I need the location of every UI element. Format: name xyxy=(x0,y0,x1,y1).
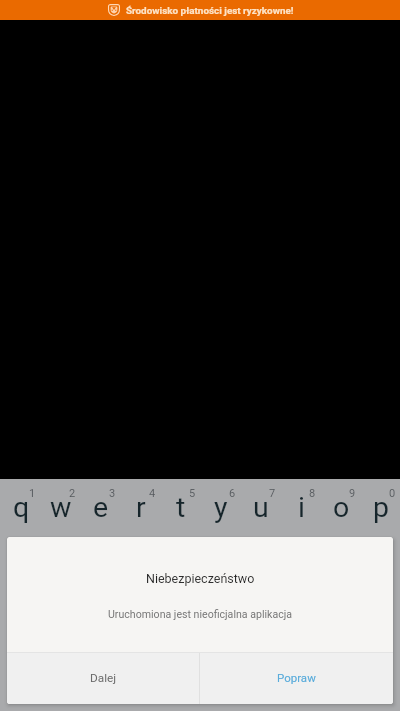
staticText: 5 xyxy=(189,487,196,500)
staticText: 2 xyxy=(69,487,76,500)
staticText: Uruchomiona jest nieoficjalna aplikacja xyxy=(108,608,293,620)
button[interactable]: Popraw xyxy=(200,653,393,704)
staticText: 6 xyxy=(229,487,236,500)
button[interactable]: 5 xyxy=(160,479,200,533)
button[interactable]: 8 xyxy=(280,479,320,533)
button[interactable]: 1 xyxy=(0,479,40,533)
button[interactable]: 4 xyxy=(120,479,160,533)
button[interactable]: 6 xyxy=(200,479,240,533)
button[interactable]: 2 xyxy=(40,479,80,533)
button[interactable]: 3 xyxy=(80,479,120,533)
staticText: q xyxy=(13,491,30,524)
staticText: r xyxy=(136,491,146,524)
staticText: Dalej xyxy=(90,671,117,685)
staticText: i xyxy=(298,491,305,524)
staticText: Niebezpieczeństwo xyxy=(146,571,255,586)
staticText: o xyxy=(333,491,350,524)
button[interactable]: Dalej xyxy=(7,653,199,704)
button[interactable]: Ostrzeżenie o ryzykownym środowisku xyxy=(0,0,400,20)
button[interactable]: 9 xyxy=(320,479,360,533)
button[interactable]: 0 xyxy=(360,479,400,533)
staticText: t xyxy=(176,491,186,524)
staticText: e xyxy=(93,491,109,524)
staticText: w xyxy=(50,491,72,524)
staticText: Popraw xyxy=(277,671,316,684)
staticText: 9 xyxy=(349,487,356,500)
button[interactable]: 7 xyxy=(240,479,280,533)
staticText: 8 xyxy=(309,487,316,500)
staticText: Środowisko płatności jest ryzykowne! xyxy=(126,5,294,17)
staticText: 3 xyxy=(109,487,116,500)
staticText: 1 xyxy=(29,487,36,500)
staticText: u xyxy=(253,491,269,524)
staticText: p xyxy=(373,491,390,524)
staticText: 0 xyxy=(389,487,396,500)
staticText: 4 xyxy=(149,487,156,500)
staticText: y xyxy=(214,491,228,524)
staticText: 7 xyxy=(269,487,276,500)
